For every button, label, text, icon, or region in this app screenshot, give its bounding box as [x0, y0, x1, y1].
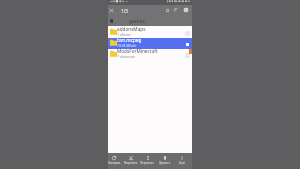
button[interactable]: games: [129, 18, 145, 25]
staticText: Ещё: [179, 161, 185, 165]
button[interactable]: Close: [108, 7, 114, 13]
button[interactable]: Settings: [183, 7, 189, 13]
staticText: Перемест.: [140, 161, 155, 165]
button[interactable]: Sort: [173, 7, 179, 13]
button[interactable]: Копиров.: [106, 153, 122, 169]
button[interactable]: Ещё: [173, 153, 190, 169]
button[interactable]: bsn.mcpeg: [108, 38, 192, 49]
staticText: 1 объект: [117, 32, 131, 36]
staticText: addonsMaps: [117, 26, 146, 32]
staticText: Вырезать: [124, 161, 138, 165]
button[interactable]: Вырезать: [122, 153, 139, 169]
button[interactable]: Internal storage: [110, 19, 113, 23]
button[interactable]: ModsForMinecraft: [108, 49, 192, 60]
staticText: 1/3: [121, 8, 128, 14]
button[interactable]: Select all: [164, 7, 170, 13]
staticText: 19.03 Мбайт: [117, 43, 137, 47]
staticText: 7 объектов: [117, 54, 135, 58]
staticText: ModsForMinecraft: [117, 48, 158, 54]
button[interactable]: Удалить: [156, 153, 173, 169]
button[interactable]: Перемест.: [139, 153, 156, 169]
button[interactable]: addonsMaps: [108, 27, 192, 38]
button[interactable]: Select item: [185, 53, 190, 58]
button[interactable]: Select item: [185, 42, 190, 47]
button[interactable]: Select item: [185, 31, 190, 36]
button[interactable]: ›: [110, 19, 112, 25]
staticText: Удалить: [159, 161, 171, 165]
staticText: Копиров.: [108, 161, 121, 165]
staticText: bsn.mcpeg: [117, 37, 142, 43]
